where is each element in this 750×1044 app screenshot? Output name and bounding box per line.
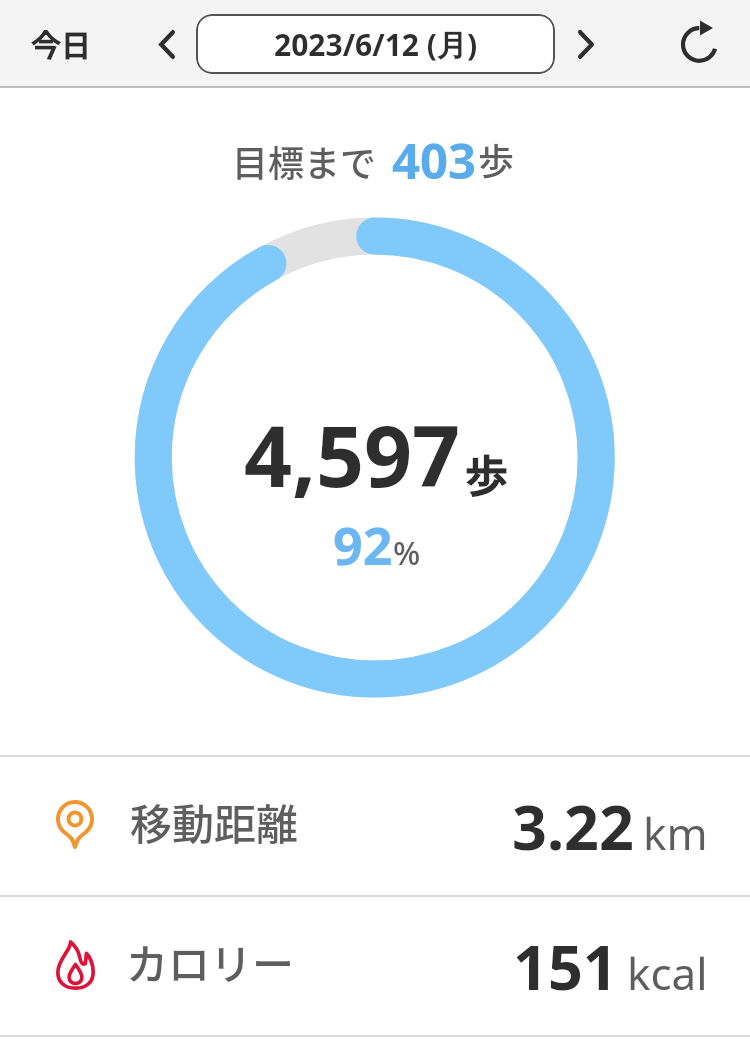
- staticText: 3.22: [512, 785, 634, 868]
- button[interactable]: 移動距離: [0, 757, 750, 895]
- button[interactable]: Refresh: [650, 0, 745, 86]
- staticText: 今日: [31, 21, 91, 64]
- staticText: kcal: [627, 943, 708, 1003]
- staticText: 目標まで: [232, 135, 377, 187]
- staticText: 151: [513, 925, 618, 1008]
- button[interactable]: Previous day: [134, 0, 200, 88]
- button[interactable]: 2023/6/12 (月): [196, 14, 555, 74]
- staticText: 92: [333, 509, 393, 580]
- staticText: 歩: [478, 133, 515, 185]
- staticText: 移動距離: [130, 791, 299, 852]
- staticText: km: [643, 803, 708, 863]
- button[interactable]: 今日: [0, 0, 126, 86]
- staticText: %: [393, 531, 421, 575]
- button[interactable]: カロリー: [0, 897, 750, 1035]
- button[interactable]: Next day: [555, 0, 617, 88]
- staticText: 403: [392, 127, 477, 194]
- staticText: 2023/6/12 (月): [274, 24, 478, 65]
- staticText: 4,597: [244, 397, 461, 511]
- staticText: 歩: [465, 442, 508, 504]
- staticText: カロリー: [126, 931, 295, 992]
